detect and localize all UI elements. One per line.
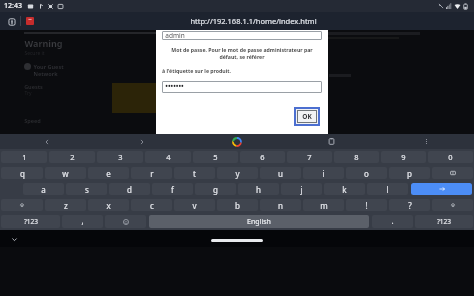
staticText: a bbox=[41, 184, 46, 195]
button[interactable]: http://192.168.1.1/home/index.html bbox=[39, 16, 468, 26]
button[interactable]: h bbox=[238, 183, 279, 195]
button[interactable]: x bbox=[88, 199, 129, 211]
staticText: s bbox=[85, 184, 89, 195]
button[interactable]: o bbox=[346, 167, 387, 179]
staticText: ?123 bbox=[437, 217, 451, 226]
staticText: 9 bbox=[401, 152, 406, 162]
staticText: 1 bbox=[22, 152, 27, 162]
staticText: Try bbox=[24, 90, 32, 97]
button[interactable]: OK bbox=[297, 110, 317, 123]
button[interactable]: p bbox=[389, 167, 430, 179]
button[interactable]: 6 bbox=[240, 151, 285, 163]
staticText: r bbox=[150, 168, 154, 179]
button[interactable]: ?123 bbox=[415, 215, 473, 228]
button[interactable]: . bbox=[372, 215, 413, 228]
button[interactable]: Emoji bbox=[105, 215, 146, 228]
button[interactable]: 3 bbox=[97, 151, 143, 163]
button[interactable]: 4 bbox=[145, 151, 191, 163]
button[interactable]: f bbox=[152, 183, 193, 195]
staticText: Warning bbox=[24, 37, 63, 49]
staticText: w bbox=[62, 168, 69, 179]
button[interactable]: b bbox=[217, 199, 258, 211]
staticText: 8 bbox=[354, 152, 359, 162]
staticText: . bbox=[391, 215, 394, 225]
staticText: 3 bbox=[118, 152, 123, 162]
staticText: c bbox=[150, 200, 154, 211]
button[interactable]: y bbox=[217, 167, 258, 179]
button[interactable]: Shift bbox=[432, 199, 473, 211]
staticText: Mot de passe. Pour le mot de passe admin… bbox=[162, 46, 322, 60]
button[interactable]: c bbox=[131, 199, 172, 211]
staticText: , bbox=[81, 215, 84, 225]
button[interactable]: q bbox=[1, 167, 43, 179]
button[interactable]: Shift bbox=[1, 199, 43, 211]
button[interactable]: k bbox=[324, 183, 365, 195]
button[interactable]: 0 bbox=[428, 151, 473, 163]
staticText: 2 bbox=[70, 152, 75, 162]
staticText: Your Guest bbox=[33, 63, 64, 70]
button[interactable]: s bbox=[66, 183, 107, 195]
button[interactable]: Previous bbox=[0, 134, 94, 149]
button[interactable]: More options bbox=[379, 134, 474, 149]
button[interactable]: t bbox=[174, 167, 215, 179]
staticText: v bbox=[192, 200, 197, 211]
staticText: ••••••• bbox=[165, 82, 184, 92]
button[interactable]: d bbox=[109, 183, 150, 195]
button[interactable]: j bbox=[281, 183, 322, 195]
staticText: 4 bbox=[166, 152, 171, 162]
button[interactable]: u bbox=[260, 167, 301, 179]
button[interactable]: n bbox=[260, 199, 301, 211]
button[interactable]: Clipboard bbox=[284, 134, 379, 149]
staticText: 0 bbox=[448, 152, 453, 162]
button[interactable]: ••••••• bbox=[162, 81, 322, 93]
staticText: m bbox=[320, 200, 328, 211]
button[interactable]: Hide keyboard bbox=[8, 233, 20, 245]
staticText: Recommended bbox=[177, 63, 218, 70]
button[interactable]: i bbox=[303, 167, 344, 179]
staticText: ?123 bbox=[24, 217, 38, 226]
button[interactable]: admin bbox=[162, 31, 322, 40]
button[interactable]: z bbox=[45, 199, 86, 211]
staticText: admin bbox=[165, 31, 185, 40]
button[interactable]: 1 bbox=[1, 151, 47, 163]
button[interactable]: v bbox=[174, 199, 215, 211]
button[interactable]: 5 bbox=[193, 151, 238, 163]
button[interactable]: ?123 bbox=[1, 215, 60, 228]
button[interactable]: Backspace bbox=[432, 167, 473, 179]
button[interactable]: , bbox=[62, 215, 103, 228]
button[interactable]: Home bbox=[211, 239, 263, 242]
button[interactable]: m bbox=[303, 199, 344, 211]
staticText: x bbox=[106, 200, 111, 211]
button[interactable]: Google bbox=[189, 134, 284, 149]
staticText: o bbox=[364, 168, 369, 179]
staticText: k bbox=[342, 184, 347, 195]
staticText: 5 bbox=[213, 152, 218, 162]
button[interactable]: ? bbox=[389, 199, 430, 211]
staticText: n bbox=[278, 200, 283, 211]
button[interactable]: 7 bbox=[287, 151, 332, 163]
staticText: y bbox=[235, 168, 240, 179]
button[interactable]: Site information bbox=[6, 16, 17, 27]
button[interactable]: Next bbox=[94, 134, 189, 149]
button[interactable]: r bbox=[131, 167, 172, 179]
staticText: Network bbox=[33, 70, 58, 77]
button[interactable]: 8 bbox=[334, 151, 379, 163]
button[interactable]: 9 bbox=[381, 151, 426, 163]
button[interactable]: ! bbox=[346, 199, 387, 211]
button[interactable]: a bbox=[23, 183, 64, 195]
staticText: Secure it bbox=[24, 50, 45, 57]
button[interactable]: Enter bbox=[411, 183, 472, 195]
button[interactable]: g bbox=[195, 183, 236, 195]
button[interactable]: l bbox=[367, 183, 408, 195]
button[interactable]: English bbox=[149, 215, 369, 228]
staticText: u bbox=[278, 168, 283, 179]
staticText: p bbox=[407, 168, 412, 179]
button[interactable]: 2 bbox=[49, 151, 95, 163]
staticText: j bbox=[300, 184, 303, 195]
staticText: h bbox=[256, 184, 261, 195]
staticText: e bbox=[106, 168, 111, 179]
staticText: English bbox=[247, 217, 271, 227]
button[interactable]: w bbox=[45, 167, 86, 179]
staticText: l bbox=[386, 184, 389, 195]
button[interactable]: e bbox=[88, 167, 129, 179]
